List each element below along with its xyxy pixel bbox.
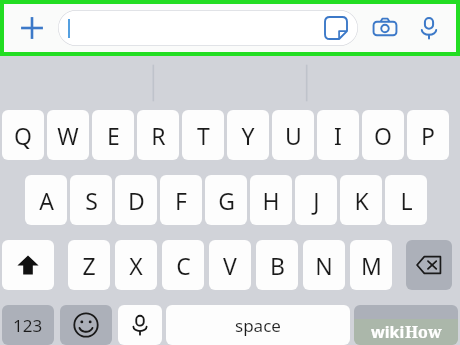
button[interactable]: N: [303, 240, 345, 290]
button[interactable]: I: [317, 110, 359, 160]
staticText: L: [400, 185, 413, 216]
staticText: I: [334, 120, 342, 151]
button[interactable]: F: [160, 175, 202, 225]
button[interactable]: Emoji: [60, 305, 112, 345]
button[interactable]: X: [115, 240, 157, 290]
staticText: R: [151, 120, 166, 151]
staticText: H: [262, 185, 280, 216]
button[interactable]: T: [182, 110, 224, 160]
staticText: N: [315, 250, 333, 281]
staticText: W: [57, 120, 79, 151]
button[interactable]: H: [250, 175, 292, 225]
button[interactable]: M: [350, 240, 392, 290]
staticText: J: [313, 185, 320, 216]
button[interactable]: 123: [2, 305, 54, 345]
staticText: 123: [13, 314, 43, 337]
staticText: A: [39, 185, 54, 216]
staticText: S: [85, 185, 98, 216]
button[interactable]: Stickers: [58, 10, 358, 46]
button[interactable]: Record audio: [410, 9, 448, 47]
staticText: E: [107, 120, 120, 151]
button[interactable]: D: [115, 175, 157, 225]
button[interactable]: J: [295, 175, 337, 225]
button[interactable]: Camera: [366, 9, 404, 47]
button[interactable]: P: [407, 110, 449, 160]
button[interactable]: Z: [68, 240, 110, 290]
staticText: B: [270, 250, 285, 281]
button[interactable]: U: [272, 110, 314, 160]
button[interactable]: C: [162, 240, 204, 290]
staticText: Z: [82, 250, 96, 281]
button[interactable]: Dictate: [118, 305, 162, 345]
button[interactable]: Add attachment: [12, 8, 52, 48]
button[interactable]: Return: [354, 305, 458, 345]
button[interactable]: V: [209, 240, 251, 290]
staticText: U: [285, 120, 302, 151]
staticText: V: [223, 250, 237, 281]
button[interactable]: Backspace: [406, 240, 452, 290]
button[interactable]: L: [385, 175, 427, 225]
button[interactable]: E: [92, 110, 134, 160]
button[interactable]: space: [166, 305, 350, 345]
button[interactable]: G: [205, 175, 247, 225]
staticText: M: [361, 250, 382, 281]
staticText: O: [374, 120, 392, 151]
button[interactable]: R: [137, 110, 179, 160]
button[interactable]: O: [362, 110, 404, 160]
staticText: How: [405, 321, 442, 343]
button[interactable]: Shift: [2, 240, 54, 290]
staticText: wiki: [371, 321, 405, 343]
staticText: K: [354, 185, 369, 216]
button[interactable]: Stickers: [322, 14, 350, 42]
button[interactable]: A: [25, 175, 67, 225]
staticText: T: [197, 120, 210, 151]
button[interactable]: W: [47, 110, 89, 160]
staticText: Q: [14, 120, 32, 151]
button[interactable]: K: [340, 175, 382, 225]
staticText: D: [128, 185, 145, 216]
button[interactable]: B: [256, 240, 298, 290]
button[interactable]: Y: [227, 110, 269, 160]
staticText: X: [129, 250, 143, 281]
staticText: F: [175, 185, 187, 216]
staticText: Y: [241, 120, 255, 151]
staticText: space: [235, 314, 281, 337]
staticText: G: [218, 185, 235, 216]
button[interactable]: S: [70, 175, 112, 225]
button[interactable]: Q: [2, 110, 44, 160]
staticText: C: [176, 250, 191, 281]
staticText: P: [421, 120, 435, 151]
